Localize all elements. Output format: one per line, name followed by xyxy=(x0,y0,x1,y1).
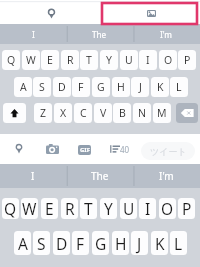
button[interactable]: Y xyxy=(100,198,117,219)
button[interactable]: Camera xyxy=(46,144,59,154)
staticText: X xyxy=(60,106,67,120)
staticText: Q xyxy=(4,198,17,219)
button[interactable]: W xyxy=(21,198,38,219)
button[interactable]: Location xyxy=(14,143,24,155)
staticText: L xyxy=(176,80,182,94)
button[interactable]: S xyxy=(33,77,51,97)
button[interactable]: L xyxy=(170,77,188,97)
button[interactable]: Poll xyxy=(110,143,130,155)
button[interactable]: D xyxy=(53,77,71,97)
staticText: O xyxy=(164,53,173,67)
button[interactable]: I xyxy=(139,50,157,70)
button[interactable]: K xyxy=(151,231,168,255)
button[interactable]: Add photo xyxy=(147,10,156,17)
staticText: Y xyxy=(104,198,113,219)
button[interactable]: I'm xyxy=(133,24,200,44)
button[interactable]: P xyxy=(178,198,195,219)
button[interactable]: J xyxy=(131,231,148,255)
staticText: U xyxy=(125,53,133,67)
staticText: Y xyxy=(106,53,112,67)
staticText: A xyxy=(18,233,28,254)
button[interactable]: T xyxy=(80,198,97,219)
staticText: F xyxy=(78,80,84,94)
button[interactable]: E xyxy=(41,198,58,219)
button[interactable]: U xyxy=(120,50,138,70)
staticText: T xyxy=(84,198,93,219)
staticText: F xyxy=(76,233,85,254)
staticText: R xyxy=(67,53,74,67)
staticText: S xyxy=(39,80,45,94)
button[interactable]: K xyxy=(151,77,169,97)
button[interactable]: I xyxy=(0,164,66,188)
button[interactable]: G xyxy=(92,77,110,97)
button[interactable]: U xyxy=(120,198,137,219)
button[interactable]: GIF xyxy=(78,145,91,155)
button[interactable]: I xyxy=(0,24,66,44)
staticText: A xyxy=(20,80,27,94)
staticText: Z xyxy=(40,106,47,120)
button[interactable]: Q xyxy=(2,198,19,219)
button[interactable]: W xyxy=(22,50,40,70)
button[interactable]: G xyxy=(92,231,109,255)
staticText: E xyxy=(47,53,53,67)
button[interactable]: Backspace xyxy=(176,103,198,123)
staticText: P xyxy=(184,53,191,67)
staticText: W xyxy=(22,198,37,219)
button[interactable]: I'm xyxy=(133,164,200,188)
staticText: H xyxy=(115,233,127,254)
button[interactable]: R xyxy=(61,50,79,70)
button[interactable]: P xyxy=(178,50,196,70)
staticText: I'm xyxy=(160,29,173,40)
button[interactable]: Shift xyxy=(3,103,26,123)
staticText: I xyxy=(31,169,35,183)
button[interactable]: Z xyxy=(34,103,52,123)
staticText: G xyxy=(95,233,107,254)
staticText: O xyxy=(161,198,174,219)
staticText: I xyxy=(145,198,151,219)
button[interactable]: ツイート xyxy=(141,142,195,160)
button[interactable]: A xyxy=(14,77,32,97)
button[interactable]: D xyxy=(53,231,70,255)
button[interactable]: The xyxy=(66,164,133,188)
button[interactable]: H xyxy=(112,77,130,97)
button[interactable]: I xyxy=(139,198,156,219)
button[interactable]: The xyxy=(66,24,133,44)
staticText: B xyxy=(119,106,126,120)
button[interactable]: F xyxy=(72,231,89,255)
button[interactable]: Y xyxy=(100,50,118,70)
staticText: D xyxy=(58,80,66,94)
button[interactable]: E xyxy=(41,50,59,70)
staticText: H xyxy=(117,80,125,94)
button[interactable]: Location xyxy=(46,8,57,20)
staticText: T xyxy=(86,53,92,67)
button[interactable]: T xyxy=(80,50,98,70)
staticText: J xyxy=(139,80,142,94)
button[interactable]: X xyxy=(54,103,72,123)
staticText: D xyxy=(56,233,68,254)
button[interactable]: J xyxy=(131,77,149,97)
button[interactable]: M xyxy=(153,103,171,123)
button[interactable]: A xyxy=(14,231,31,255)
staticText: R xyxy=(65,198,75,219)
staticText: C xyxy=(80,106,87,120)
button[interactable]: C xyxy=(74,103,92,123)
button[interactable]: O xyxy=(159,198,176,219)
button[interactable]: L xyxy=(170,231,187,255)
button[interactable]: N xyxy=(133,103,151,123)
button[interactable]: Q xyxy=(2,50,20,70)
button[interactable]: V xyxy=(94,103,112,123)
staticText: P xyxy=(182,198,192,219)
button[interactable]: R xyxy=(61,198,78,219)
staticText: Q xyxy=(7,53,16,67)
staticText: M xyxy=(157,106,167,120)
staticText: U xyxy=(123,198,135,219)
button[interactable]: S xyxy=(33,231,50,255)
button[interactable]: O xyxy=(159,50,177,70)
button[interactable]: F xyxy=(72,77,90,97)
button[interactable]: B xyxy=(113,103,131,123)
staticText: 40 xyxy=(120,144,130,155)
button[interactable]: H xyxy=(112,231,129,255)
staticText: S xyxy=(37,233,46,254)
staticText: L xyxy=(174,233,183,254)
staticText: K xyxy=(157,80,164,94)
